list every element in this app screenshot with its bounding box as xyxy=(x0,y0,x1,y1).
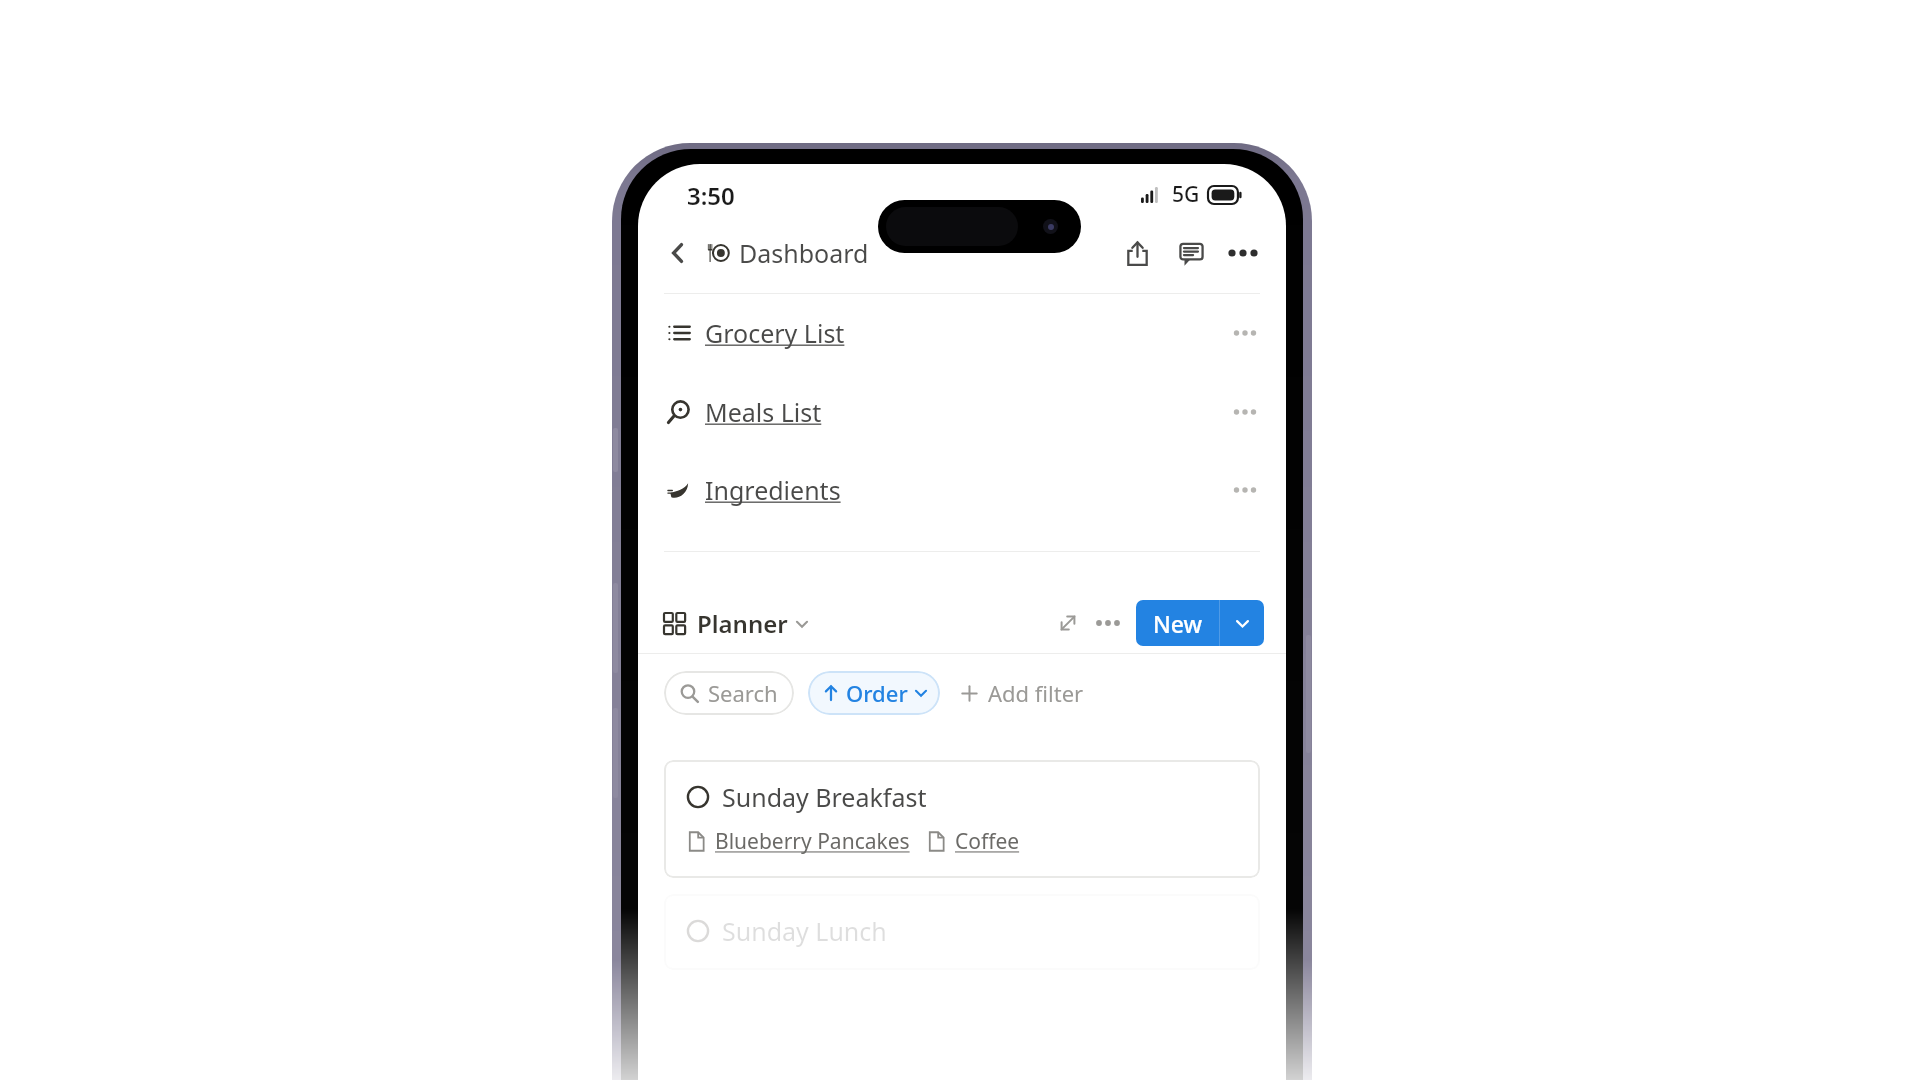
button[interactable]: New xyxy=(1136,600,1264,646)
button[interactable]: New options xyxy=(1220,600,1264,646)
button[interactable]: Order xyxy=(808,671,940,715)
staticText: Add filter xyxy=(988,678,1084,708)
button[interactable]: Meals List options xyxy=(1228,395,1262,429)
button[interactable]: Ingredients options xyxy=(1228,473,1262,507)
button[interactable]: Dashboard xyxy=(706,230,869,276)
staticText: Planner xyxy=(697,607,788,640)
staticText: 3:50 xyxy=(687,179,735,212)
button[interactable]: Ingredients xyxy=(638,473,1286,507)
button[interactable]: Search xyxy=(664,671,794,715)
button[interactable]: Comments xyxy=(1170,232,1212,274)
staticText: New xyxy=(1153,608,1203,639)
button[interactable]: Add filter xyxy=(956,670,1088,716)
staticText: Sunday Lunch xyxy=(722,914,887,948)
staticText: Dashboard xyxy=(739,236,869,270)
staticText: Ingredients xyxy=(705,473,841,507)
button[interactable]: Coffee xyxy=(926,827,1020,856)
staticText: Blueberry Pancakes xyxy=(715,827,910,856)
staticText: Grocery List xyxy=(705,316,845,350)
staticText: 5G xyxy=(1172,180,1200,209)
staticText: Sunday Breakfast xyxy=(722,780,927,814)
staticText: Coffee xyxy=(955,827,1020,856)
button[interactable]: Sunday Lunch xyxy=(664,894,1260,970)
staticText: Meals List xyxy=(705,395,822,429)
button[interactable]: Back xyxy=(658,233,698,273)
button[interactable]: Grocery List xyxy=(638,316,1286,350)
button[interactable]: More options xyxy=(1222,232,1264,274)
staticText: Search xyxy=(708,678,778,708)
button[interactable]: Grocery List options xyxy=(1228,316,1262,350)
button[interactable]: Planner xyxy=(664,603,809,644)
button[interactable]: Meals List xyxy=(638,395,1286,429)
button[interactable]: Blueberry Pancakes xyxy=(686,827,910,856)
button[interactable]: Sunday Breakfast xyxy=(664,760,1260,878)
button[interactable]: View options xyxy=(1090,605,1126,641)
staticText: Order xyxy=(846,678,908,708)
button[interactable]: Expand xyxy=(1050,605,1086,641)
button[interactable]: Share xyxy=(1116,232,1158,274)
